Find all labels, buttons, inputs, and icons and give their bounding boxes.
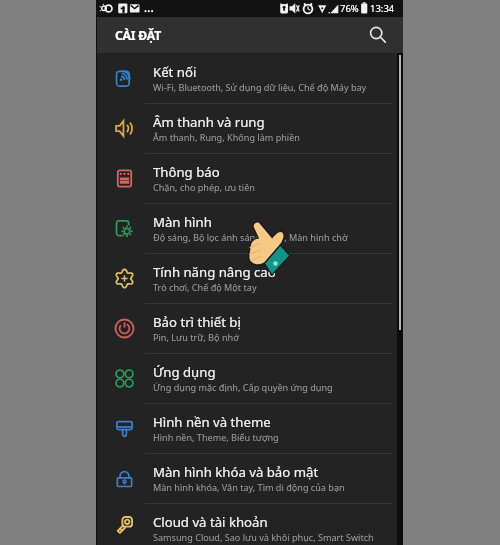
button[interactable]: Cloud và tài khoản	[96, 503, 403, 545]
staticText: Âm thanh, Rung, Không làm phiền	[153, 131, 300, 143]
staticText: Trò chơi, Chế độ Một tay	[153, 281, 257, 293]
button[interactable]: Tính năng nâng cao	[96, 253, 403, 303]
staticText: Thông báo	[153, 163, 220, 181]
button[interactable]: Thông báo	[96, 153, 403, 203]
staticText: Ứng dụng	[153, 363, 216, 381]
button[interactable]: Kết nối	[96, 53, 403, 103]
button[interactable]: Search	[364, 21, 392, 49]
staticText: Pin, Lưu trữ, Bộ nhớ	[153, 331, 239, 343]
staticText: Độ sáng, Bộ lọc ánh sáng xanh, Màn hình …	[153, 231, 348, 243]
staticText: Màn hình khóa, Vân tay, Tìm di động của …	[153, 481, 345, 493]
staticText: Âm thanh và rung	[153, 113, 265, 131]
staticText: Kết nối	[153, 63, 197, 81]
staticText: Wi-Fi, Bluetooth, Sử dụng dữ liệu, Chế đ…	[153, 81, 367, 93]
staticText: Màn hình	[153, 213, 212, 231]
staticText: Hình nền, Theme, Biểu tượng	[153, 431, 279, 443]
staticText: Samsung Cloud, Sao lưu và khôi phục, Sma…	[153, 531, 374, 543]
staticText: Tính năng nâng cao	[153, 263, 276, 281]
button[interactable]: Bảo trì thiết bị	[96, 303, 403, 353]
staticText: 76%	[340, 2, 359, 15]
staticText: Màn hình khóa và bảo mật	[153, 463, 319, 481]
staticText: Ứng dụng mặc định, Cấp quyền ứng dụng	[153, 381, 333, 393]
staticText: CÀI ĐẶT	[115, 27, 162, 44]
staticText: 13:34	[370, 2, 395, 15]
button[interactable]: Màn hình	[96, 203, 403, 253]
button[interactable]: Màn hình khóa và bảo mật	[96, 453, 403, 503]
staticText: Bảo trì thiết bị	[153, 313, 241, 331]
button[interactable]: Âm thanh và rung	[96, 103, 403, 153]
button[interactable]: Ứng dụng	[96, 353, 403, 403]
button[interactable]: Hình nền và theme	[96, 403, 403, 453]
staticText: Hình nền và theme	[153, 413, 271, 431]
staticText: Cloud và tài khoản	[153, 513, 268, 531]
staticText: Chặn, cho phép, ưu tiên	[153, 181, 255, 193]
